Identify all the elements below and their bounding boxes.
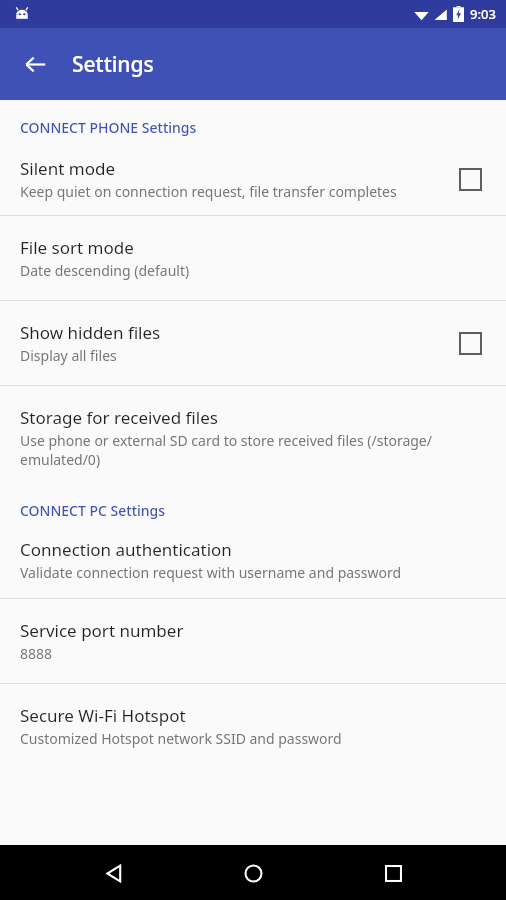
button[interactable]: Show hidden files [0,301,506,385]
staticText: File sort mode [20,236,134,259]
button[interactable]: Back [12,41,58,87]
staticText: Show hidden files [20,321,161,344]
staticText: Storage for received files [20,406,218,429]
staticText: CONNECT PHONE Settings [20,118,197,137]
staticText: Use phone or external SD card to store r… [20,431,490,469]
button[interactable]: Back [88,847,140,899]
staticText: Date descending (default) [20,261,190,280]
staticText: Connection authentication [20,538,232,561]
staticText: Settings [72,50,154,79]
staticText: Customized Hotspot network SSID and pass… [20,729,342,748]
button[interactable]: Recents [367,847,419,899]
staticText: Display all files [20,346,117,365]
button[interactable]: Home [227,847,279,899]
button[interactable]: Toggle Silent mode [450,159,490,199]
staticText: Validate connection request with usernam… [20,563,402,582]
button[interactable]: Storage for received files [0,386,506,485]
staticText: Silent mode [20,157,115,180]
button[interactable]: Silent mode [0,147,506,215]
button[interactable]: Service port number [0,599,506,683]
button[interactable]: Toggle Show hidden files [450,323,490,363]
button[interactable]: File sort mode [0,216,506,300]
button[interactable]: Secure Wi-Fi Hotspot [0,684,506,768]
staticText: Service port number [20,619,184,642]
staticText: Secure Wi-Fi Hotspot [20,704,186,727]
staticText: 9:03 [470,5,496,23]
staticText: Keep quiet on connection request, file t… [20,182,397,201]
button[interactable]: Connection authentication [0,530,506,598]
staticText: CONNECT PC Settings [20,501,166,520]
staticText: 8888 [20,644,53,663]
